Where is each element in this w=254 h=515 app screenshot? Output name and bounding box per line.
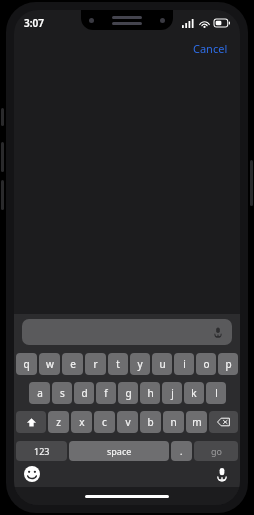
staticText: space — [107, 445, 132, 457]
staticText: n — [170, 415, 177, 429]
button[interactable]: v — [117, 411, 138, 433]
button[interactable]: q — [16, 353, 37, 375]
button[interactable]: f — [96, 382, 116, 404]
button[interactable]: k — [184, 382, 204, 404]
staticText: v — [125, 415, 131, 429]
button[interactable]: Emoji — [24, 466, 40, 482]
button[interactable]: p — [218, 353, 238, 375]
button[interactable]: Voice input — [22, 319, 232, 345]
staticText: l — [215, 386, 218, 400]
staticText: p — [225, 357, 232, 371]
button[interactable]: s — [52, 382, 72, 404]
staticText: s — [60, 386, 65, 400]
button[interactable]: j — [162, 382, 182, 404]
staticText: f — [104, 386, 108, 400]
staticText: c — [102, 415, 107, 429]
staticText: 123 — [34, 445, 50, 457]
button[interactable]: h — [140, 382, 160, 404]
button[interactable]: a — [29, 382, 50, 404]
button[interactable]: go — [194, 441, 238, 461]
staticText: . — [180, 445, 183, 457]
button[interactable]: l — [206, 382, 226, 404]
staticText: w — [46, 357, 54, 371]
button[interactable]: u — [152, 353, 172, 375]
staticText: m — [192, 415, 202, 429]
button[interactable]: r — [85, 353, 106, 375]
button[interactable]: z — [48, 411, 69, 433]
staticText: h — [147, 386, 154, 400]
button[interactable]: n — [163, 411, 184, 433]
staticText: y — [137, 357, 143, 371]
button[interactable]: w — [39, 353, 60, 375]
button[interactable]: Voice input — [214, 466, 230, 482]
button[interactable]: x — [71, 411, 92, 433]
staticText: a — [37, 386, 43, 400]
staticText: r — [93, 357, 98, 371]
staticText: b — [147, 415, 154, 429]
button[interactable]: Cancel — [189, 39, 232, 58]
button[interactable]: i — [174, 353, 194, 375]
staticText: t — [116, 357, 120, 371]
staticText: i — [183, 357, 186, 371]
staticText: q — [23, 357, 30, 371]
staticText: go — [211, 445, 222, 457]
button[interactable]: space — [69, 441, 169, 461]
staticText: x — [79, 415, 85, 429]
staticText: o — [203, 357, 210, 371]
button[interactable]: y — [130, 353, 150, 375]
button[interactable]: m — [186, 411, 207, 433]
button[interactable]: 123 — [16, 441, 67, 461]
button[interactable]: d — [74, 382, 94, 404]
button[interactable]: b — [140, 411, 161, 433]
button[interactable]: o — [196, 353, 216, 375]
other: Voice input — [212, 326, 224, 338]
button[interactable]: e — [62, 353, 83, 375]
button[interactable]: t — [108, 353, 128, 375]
staticText: u — [159, 357, 166, 371]
staticText: k — [191, 386, 197, 400]
staticText: j — [171, 386, 174, 400]
staticText: Cancel — [193, 41, 228, 56]
button[interactable]: Shift — [16, 411, 46, 433]
button[interactable]: g — [118, 382, 138, 404]
staticText: e — [70, 357, 76, 371]
staticText: 3:07 — [24, 16, 44, 30]
staticText: g — [125, 386, 132, 400]
staticText: d — [81, 386, 88, 400]
button[interactable]: c — [94, 411, 115, 433]
button[interactable]: . — [171, 441, 192, 461]
button[interactable]: Backspace — [209, 411, 238, 433]
staticText: z — [56, 415, 61, 429]
